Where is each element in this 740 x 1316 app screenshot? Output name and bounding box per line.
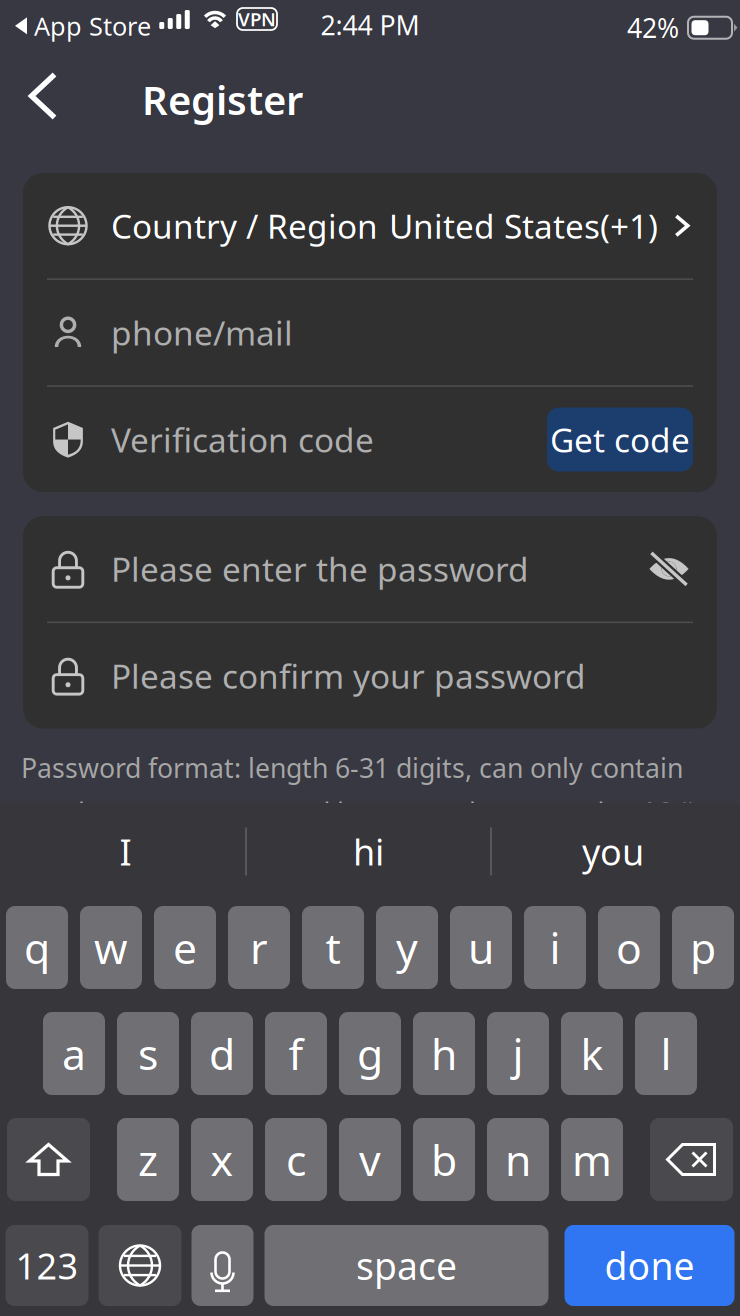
staticText: u (468, 919, 494, 976)
staticText: h (431, 1025, 457, 1082)
button[interactable]: Shift (7, 1118, 90, 1201)
button[interactable]: u (450, 906, 512, 989)
button[interactable]: I (6, 815, 245, 888)
staticText: 123 (15, 1242, 78, 1289)
button[interactable]: h (413, 1012, 475, 1095)
staticText: Country / Region (111, 204, 378, 248)
button[interactable]: c (265, 1118, 327, 1201)
button[interactable]: App Store (15, 9, 151, 43)
button[interactable]: j (487, 1012, 549, 1095)
button[interactable]: y (376, 906, 438, 989)
staticText: Get code (550, 417, 690, 462)
button[interactable]: Dictate (191, 1225, 253, 1306)
button[interactable]: k (561, 1012, 623, 1095)
staticText: a (62, 1025, 86, 1082)
button[interactable]: l (635, 1012, 697, 1095)
staticText: hi (353, 828, 384, 875)
staticText: p (690, 919, 716, 976)
button[interactable]: x (191, 1118, 253, 1201)
button[interactable]: Delete (650, 1118, 733, 1201)
staticText: s (138, 1025, 158, 1082)
staticText: e (173, 919, 197, 976)
button[interactable]: w (80, 906, 142, 989)
button[interactable]: o (598, 906, 660, 989)
staticText: I (119, 828, 131, 875)
staticText: w (94, 919, 128, 976)
button[interactable]: f (265, 1012, 327, 1095)
button[interactable]: Next keyboard (98, 1225, 181, 1306)
button[interactable]: z (117, 1118, 179, 1201)
staticText: 2:44 PM (320, 7, 419, 43)
button[interactable]: d (191, 1012, 253, 1095)
button[interactable]: g (339, 1012, 401, 1095)
staticText: phone/mail (111, 310, 293, 355)
staticText: 42% (627, 10, 679, 45)
staticText: z (138, 1131, 158, 1188)
staticText: space (356, 1241, 457, 1290)
button[interactable]: t (302, 906, 364, 989)
button[interactable]: you (492, 815, 734, 888)
staticText: c (286, 1131, 306, 1188)
staticText: y (396, 919, 418, 976)
staticText: i (549, 919, 560, 976)
staticText: VPN (238, 7, 276, 31)
staticText: you (582, 828, 644, 875)
staticText: Verification code (111, 417, 374, 462)
button[interactable]: e (154, 906, 216, 989)
button[interactable]: phone/mail (23, 280, 717, 385)
staticText: g (357, 1025, 383, 1082)
staticText: f (288, 1025, 303, 1082)
staticText: x (210, 1131, 233, 1188)
button[interactable]: q (6, 906, 68, 989)
staticText: United States(+1) (389, 204, 658, 248)
button[interactable]: hi (247, 815, 490, 888)
staticText: Please confirm your password (111, 654, 586, 698)
staticText: Please enter the password (111, 547, 529, 591)
button[interactable]: Get code (547, 407, 693, 471)
staticText: done (604, 1241, 694, 1290)
staticText: j (512, 1025, 523, 1082)
staticText: v (359, 1131, 381, 1188)
staticText: Register (142, 73, 303, 126)
button[interactable]: Back (14, 65, 72, 127)
button[interactable]: i (524, 906, 586, 989)
staticText: b (431, 1131, 457, 1188)
staticText: d (209, 1025, 235, 1082)
button[interactable]: Show password (645, 545, 693, 593)
staticText: App Store (27, 9, 151, 43)
staticText: o (616, 919, 642, 976)
staticText: Password format: length 6-31 digits, can… (21, 750, 683, 785)
button[interactable]: space (264, 1225, 548, 1306)
button[interactable]: v (339, 1118, 401, 1201)
button[interactable]: a (43, 1012, 105, 1095)
staticText: l (660, 1025, 671, 1082)
staticText: k (580, 1025, 603, 1082)
button[interactable]: p (672, 906, 734, 989)
staticText: r (250, 919, 268, 976)
button[interactable]: 123 (5, 1225, 88, 1306)
staticText: t (325, 919, 340, 976)
button[interactable]: done (564, 1225, 734, 1306)
button[interactable]: b (413, 1118, 475, 1201)
staticText: q (24, 919, 50, 976)
button[interactable]: Country / Region (23, 173, 717, 278)
staticText: n (505, 1131, 531, 1188)
button[interactable]: n (487, 1118, 549, 1201)
button[interactable]: r (228, 906, 290, 989)
button[interactable]: s (117, 1012, 179, 1095)
staticText: m (572, 1131, 612, 1188)
button[interactable]: m (561, 1118, 623, 1201)
staticText: numbers, uppercase and lowercase letters… (21, 794, 694, 830)
